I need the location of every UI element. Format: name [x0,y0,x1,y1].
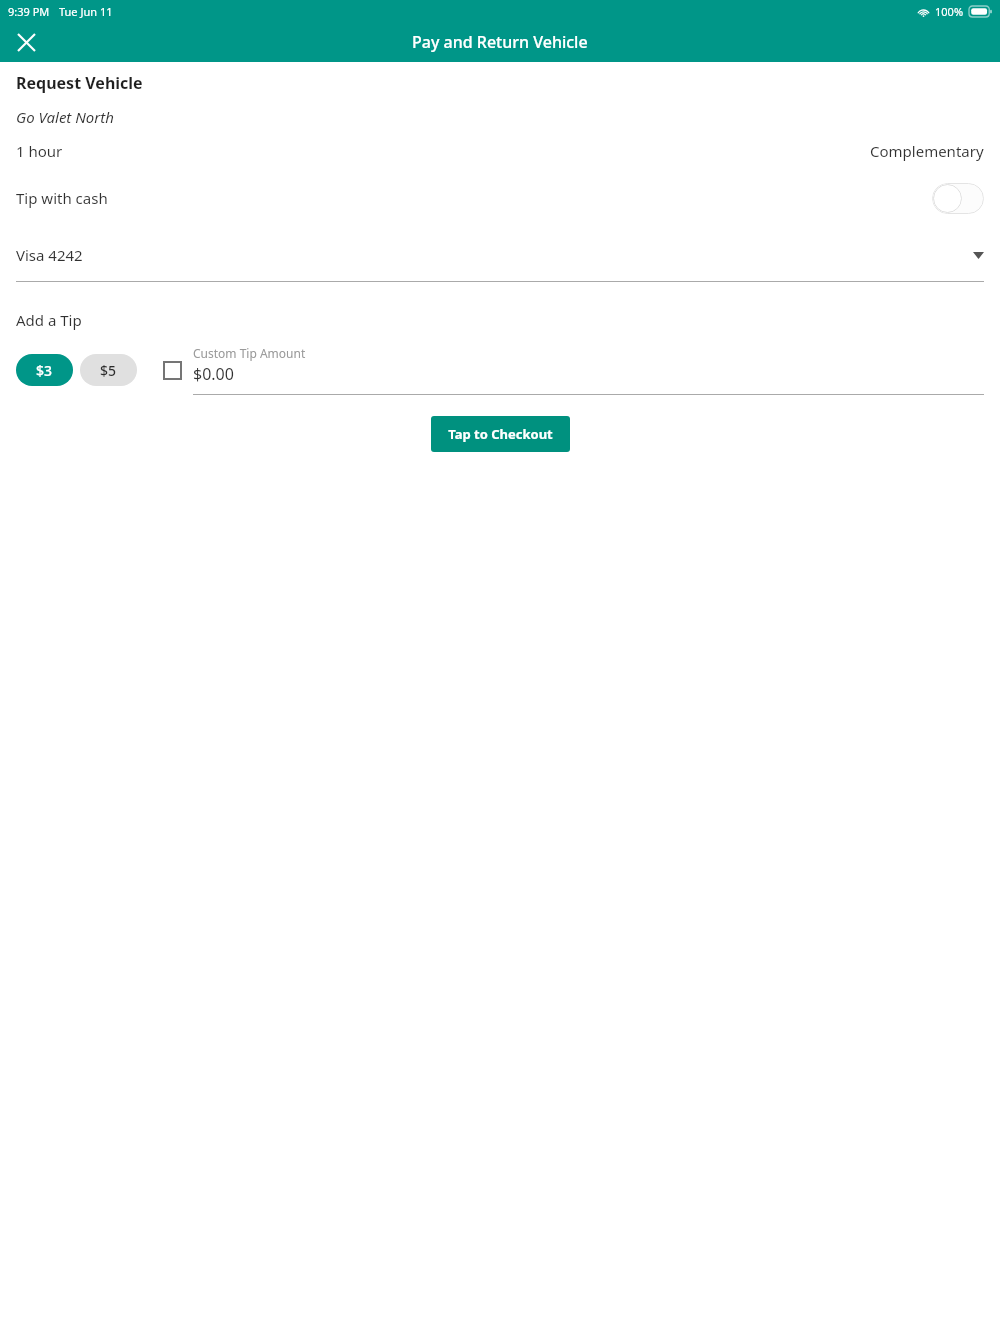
button[interactable]: Tap to Checkout [431,416,570,452]
button[interactable]: Use custom tip [159,357,185,383]
staticText: $0.00 [193,363,234,385]
staticText: Go Valet North [16,107,114,127]
staticText: Add a Tip [16,310,82,330]
staticText: Request Vehicle [16,72,143,94]
button[interactable]: Tip with cash toggle [932,183,984,214]
staticText: Custom Tip Amount [193,345,306,361]
staticText: Complementary [870,141,984,161]
button[interactable]: $5 [80,354,137,386]
staticText: Tue Jun 11 [59,4,113,19]
staticText: $5 [100,361,117,380]
button[interactable]: Close [6,22,46,62]
button[interactable]: Custom Tip Amount [193,345,984,395]
staticText: Pay and Return Vehicle [412,31,588,53]
button[interactable]: Tip with cash [16,181,984,215]
staticText: Tap to Checkout [448,425,553,443]
staticText: 100% [935,4,964,19]
staticText: $3 [36,361,53,380]
staticText: 1 hour [16,141,63,161]
staticText: 9:39 PM [8,4,50,19]
button[interactable]: $3 [16,354,73,386]
staticText: Visa 4242 [16,245,83,265]
staticText: Tip with cash [16,188,108,208]
button[interactable]: Visa 4242 [16,245,984,282]
